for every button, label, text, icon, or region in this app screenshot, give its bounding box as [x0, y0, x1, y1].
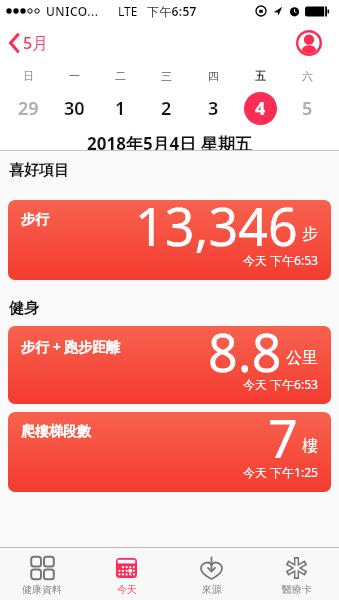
staticText: 三	[161, 69, 172, 83]
button[interactable]: 4	[237, 84, 284, 132]
button[interactable]: 今天	[84, 548, 169, 600]
button[interactable]: 29	[5, 84, 51, 132]
staticText: 步	[302, 224, 318, 244]
staticText: 步行	[21, 211, 49, 229]
button[interactable]: 來源	[169, 548, 254, 600]
staticText: 30	[64, 96, 85, 121]
staticText: 日	[23, 69, 34, 83]
staticText: 來源	[202, 583, 222, 596]
button[interactable]: 30	[51, 84, 97, 132]
staticText: 2018年5月4日 星期五	[87, 132, 252, 152]
staticText: 1	[115, 96, 126, 121]
staticText: 下午6:57	[147, 3, 197, 19]
staticText: 今天 下午1:25	[243, 464, 318, 480]
button[interactable]: 2	[143, 84, 190, 132]
staticText: 2	[161, 96, 172, 121]
staticText: 3	[208, 96, 219, 121]
staticText: 29	[18, 96, 39, 121]
staticText: 六	[302, 69, 313, 83]
button[interactable]: 步行	[8, 200, 331, 280]
staticText: 爬樓梯段數	[21, 423, 91, 441]
button[interactable]	[296, 30, 322, 56]
staticText: 今天	[117, 583, 137, 596]
staticText: 喜好項目	[9, 161, 69, 180]
staticText: 五	[255, 69, 266, 83]
button[interactable]: 5月	[8, 32, 49, 54]
staticText: LTE	[118, 3, 138, 19]
staticText: 健身	[9, 299, 39, 318]
staticText: 13,346	[135, 200, 298, 254]
staticText: UNICO...	[46, 3, 99, 19]
button[interactable]: 5	[284, 84, 331, 132]
staticText: 樓	[302, 436, 318, 456]
staticText: 二	[115, 69, 126, 83]
staticText: 公里	[286, 348, 318, 368]
staticText: 一	[69, 69, 80, 83]
button[interactable]: 健康資料	[0, 548, 84, 600]
staticText: 7	[268, 412, 298, 466]
staticText: 健康資料	[22, 583, 62, 596]
staticText: 5月	[23, 32, 49, 54]
staticText: 醫療卡	[282, 583, 312, 596]
staticText: 8.8	[208, 326, 282, 378]
staticText: 今天 下午6:53	[243, 252, 318, 268]
staticText: 四	[208, 69, 219, 83]
button[interactable]: 爬樓梯段數	[8, 412, 331, 492]
button[interactable]: 步行 + 跑步距離	[8, 326, 331, 404]
staticText: 今天 下午6:53	[243, 376, 318, 392]
button[interactable]: 3	[190, 84, 237, 132]
staticText: 4	[255, 96, 266, 121]
button[interactable]: 1	[97, 84, 143, 132]
button[interactable]: 醫療卡	[254, 548, 339, 600]
staticText: 步行 + 跑步距離	[21, 337, 121, 356]
staticText: 5	[302, 96, 313, 121]
